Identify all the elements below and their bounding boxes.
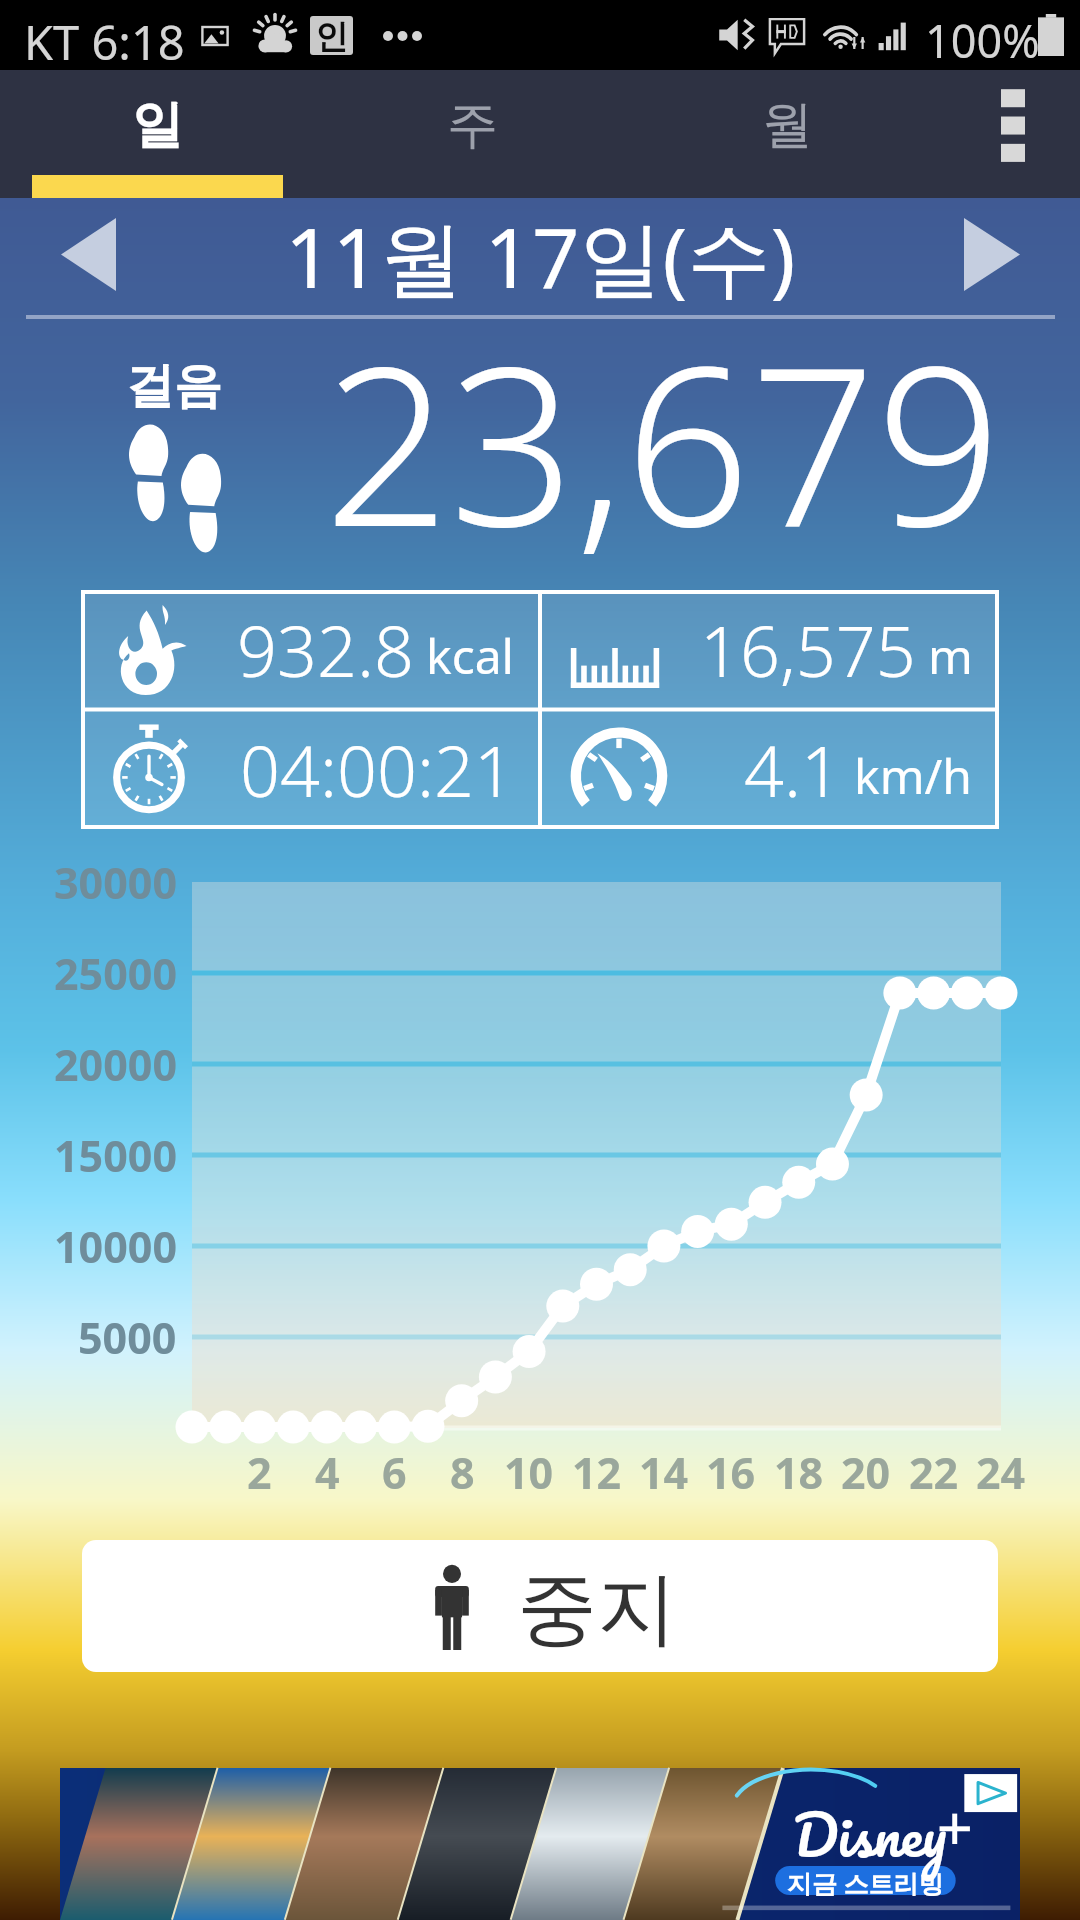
button[interactable]: Advertisement	[60, 1768, 1020, 1920]
button[interactable]: 중지	[82, 1540, 998, 1672]
staticText: 932.8	[237, 602, 414, 697]
staticText: 월	[762, 93, 813, 157]
staticText: kcal	[426, 623, 514, 688]
staticText: 주	[447, 93, 498, 157]
staticText: 20	[841, 1443, 891, 1502]
button[interactable]: 월	[630, 70, 945, 198]
staticText: 중지	[517, 1559, 677, 1660]
staticText: 6	[382, 1443, 407, 1502]
staticText: 8	[450, 1443, 475, 1502]
staticText: 12	[572, 1443, 622, 1502]
staticText: 일	[132, 93, 183, 157]
staticText: 30000	[54, 853, 177, 912]
staticText: 10	[504, 1443, 554, 1502]
staticText: 16	[706, 1443, 756, 1502]
staticText: 4	[315, 1443, 340, 1502]
button[interactable]: 주	[315, 70, 630, 198]
button[interactable]: 04:00:21	[81, 709, 540, 829]
staticText: KT 6:18	[24, 10, 185, 74]
button[interactable]: Previous day	[0, 198, 180, 319]
staticText: 인	[315, 16, 348, 55]
staticText: 14	[639, 1443, 689, 1502]
button[interactable]: 4.1	[540, 709, 999, 829]
staticText: Disney	[793, 1787, 947, 1882]
staticText: 2	[247, 1443, 272, 1502]
staticText: 걸음	[126, 356, 222, 416]
staticText: 16,575	[700, 602, 916, 697]
staticText: 10000	[54, 1217, 177, 1276]
staticText: 100%	[925, 10, 1040, 71]
staticText: 25000	[54, 944, 177, 1003]
staticText: km/h	[854, 743, 973, 808]
staticText: 지금 스트리밍	[787, 1866, 944, 1896]
staticText: 20000	[54, 1035, 177, 1094]
staticText: 11월 17일(수)	[285, 199, 796, 312]
button[interactable]: More options	[945, 70, 1080, 198]
button[interactable]: 932.8	[81, 590, 540, 709]
button[interactable]: 16,575	[540, 590, 999, 709]
staticText: 04:00:21	[240, 722, 514, 817]
staticText: m	[928, 623, 973, 688]
button[interactable]: 일	[0, 70, 315, 198]
staticText: 5000	[78, 1308, 177, 1367]
staticText: 23,679	[324, 291, 1002, 562]
staticText: 18	[774, 1443, 824, 1502]
staticText: 22	[909, 1443, 959, 1502]
button[interactable]: Next day	[900, 198, 1080, 319]
staticText: 4.1	[744, 722, 842, 817]
staticText: 24	[976, 1443, 1026, 1502]
staticText: 15000	[54, 1126, 177, 1185]
